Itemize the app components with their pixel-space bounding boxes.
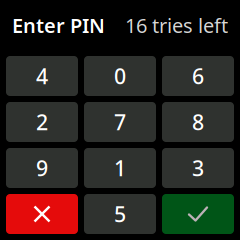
button[interactable]: 5 — [84, 194, 156, 234]
staticText: 16 tries left — [125, 12, 228, 39]
button[interactable]: 4 — [6, 56, 78, 96]
button[interactable]: 6 — [162, 56, 234, 96]
button[interactable]: 3 — [162, 148, 234, 188]
button[interactable]: 8 — [162, 102, 234, 142]
button[interactable]: 0 — [84, 56, 156, 96]
button[interactable]: 7 — [84, 102, 156, 142]
staticText: 9 — [36, 154, 48, 182]
button[interactable]: 2 — [6, 102, 78, 142]
button[interactable]: Confirm — [162, 194, 234, 234]
staticText: 4 — [36, 62, 48, 90]
staticText: 2 — [36, 108, 48, 136]
staticText: 1 — [114, 154, 126, 182]
staticText: 6 — [192, 62, 204, 90]
staticText: 7 — [114, 108, 126, 136]
button[interactable]: 1 — [84, 148, 156, 188]
staticText: 5 — [114, 200, 126, 228]
button[interactable]: 9 — [6, 148, 78, 188]
button[interactable]: Cancel — [6, 194, 78, 234]
staticText: 8 — [192, 108, 204, 136]
staticText: 3 — [192, 154, 204, 182]
staticText: 0 — [114, 62, 126, 90]
staticText: Enter PIN — [12, 12, 105, 39]
